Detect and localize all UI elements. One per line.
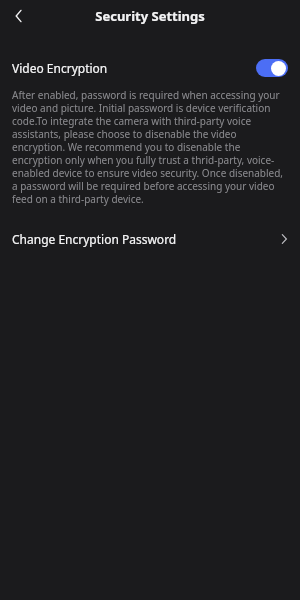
- staticText: Change Encryption Password: [12, 231, 177, 247]
- button[interactable]: Video Encryption toggle, on: [256, 59, 288, 77]
- staticText: Video Encryption: [12, 60, 108, 76]
- staticText: Security Settings: [95, 7, 205, 25]
- staticText: After enabled, password is required when…: [12, 88, 288, 206]
- button[interactable]: Video Encryption: [0, 53, 300, 83]
- button[interactable]: Change Encryption Password: [0, 222, 300, 256]
- button[interactable]: Back: [6, 3, 32, 29]
